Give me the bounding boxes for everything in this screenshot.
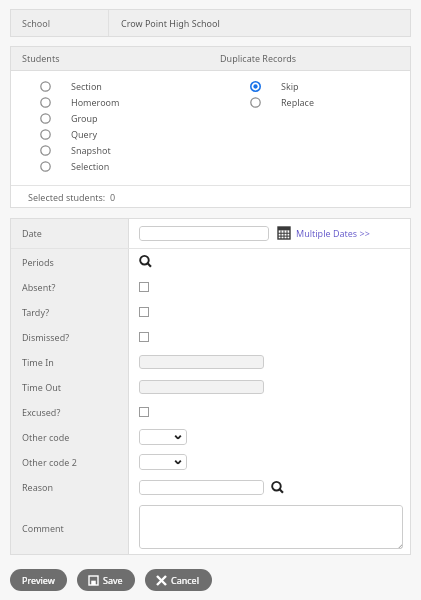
staticText: Excused?: [22, 406, 61, 418]
staticText: Other code: [22, 431, 70, 443]
button[interactable]: Multiple Dates >>: [296, 227, 370, 239]
staticText: Section: [71, 80, 102, 92]
staticText: Selection: [71, 160, 110, 172]
staticText: Homeroom: [71, 96, 120, 108]
button[interactable]: Preview: [10, 569, 67, 591]
button[interactable]: [139, 355, 264, 369]
staticText: Students: [22, 52, 60, 64]
staticText: School: [22, 17, 51, 29]
staticText: Save: [103, 574, 123, 586]
staticText: Cancel: [171, 574, 200, 586]
button[interactable]: Replace: [220, 94, 411, 110]
staticText: Snapshot: [71, 144, 111, 156]
button[interactable]: [139, 505, 403, 549]
button[interactable]: Group: [10, 110, 220, 126]
button[interactable]: Homeroom: [10, 94, 220, 110]
button[interactable]: Checkbox: [139, 282, 149, 292]
staticText: Time In: [22, 356, 54, 368]
button[interactable]: Snapshot: [10, 142, 220, 158]
button[interactable]: Skip: [220, 78, 411, 94]
button[interactable]: Search: [271, 481, 284, 494]
staticText: Preview: [22, 574, 55, 586]
button[interactable]: Checkbox: [139, 407, 149, 417]
staticText: Periods: [22, 256, 54, 268]
button[interactable]: [139, 226, 269, 241]
staticText: Tardy?: [22, 306, 50, 318]
button[interactable]: Save: [77, 569, 135, 591]
button[interactable]: [139, 454, 187, 470]
button[interactable]: [139, 429, 187, 445]
staticText: Group: [71, 112, 98, 124]
staticText: Other code 2: [22, 456, 77, 468]
button[interactable]: School: [10, 9, 411, 37]
button[interactable]: Calendar: [278, 227, 290, 239]
button[interactable]: Selection: [10, 158, 220, 174]
staticText: Replace: [281, 96, 314, 108]
staticText: Skip: [281, 80, 299, 92]
button[interactable]: [139, 480, 264, 495]
button[interactable]: Checkbox: [139, 332, 149, 342]
staticText: Query: [71, 128, 97, 140]
staticText: Multiple Dates >>: [296, 227, 370, 239]
button[interactable]: Query: [10, 126, 220, 142]
staticText: Crow Point High School: [121, 17, 220, 29]
button[interactable]: Checkbox: [139, 307, 149, 317]
staticText: Comment: [22, 522, 64, 534]
button[interactable]: Search: [139, 255, 152, 268]
staticText: Duplicate Records: [220, 52, 297, 64]
staticText: Selected students: 0: [28, 191, 116, 203]
button[interactable]: Cancel: [145, 569, 212, 591]
staticText: Reason: [22, 481, 54, 493]
button[interactable]: [139, 380, 264, 394]
staticText: Absent?: [22, 281, 56, 293]
staticText: Time Out: [22, 381, 61, 393]
staticText: Date: [22, 227, 42, 239]
staticText: Dismissed?: [22, 331, 70, 343]
button[interactable]: Section: [10, 78, 220, 94]
